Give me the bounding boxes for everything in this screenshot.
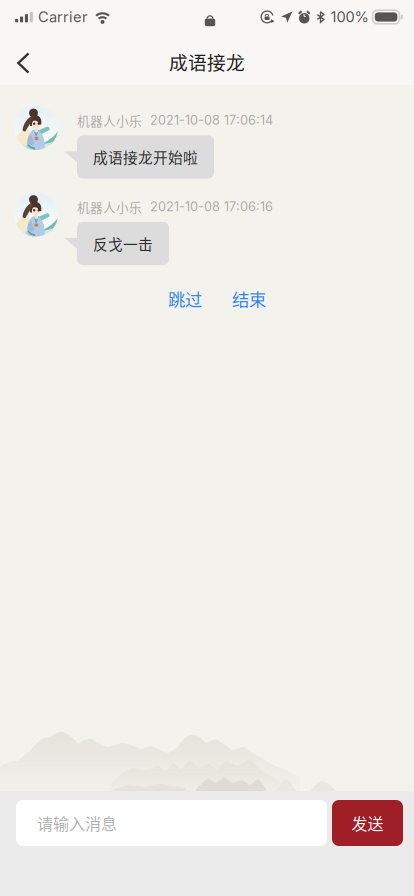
staticText: 反戈一击 (93, 233, 153, 254)
staticText: 成语接龙 (169, 48, 245, 75)
staticText: 发送 (351, 811, 383, 835)
staticText: 成语接龙开始啦 (93, 146, 198, 167)
button[interactable]: 跳过 (158, 279, 212, 318)
staticText: 100% (331, 8, 369, 26)
staticText: 机器人小乐 (77, 111, 142, 129)
staticText: Carrier (38, 8, 88, 26)
staticText: 2021-10-08 17:06:16 (150, 199, 273, 214)
button[interactable]: 发送 (332, 800, 403, 846)
staticText: 结束 (232, 286, 266, 311)
staticText: 机器人小乐 (77, 198, 142, 216)
button[interactable]: 结束 (222, 279, 276, 318)
button[interactable]: Back (0, 39, 44, 80)
staticText: 跳过 (168, 286, 202, 311)
staticText: 请输入消息 (37, 811, 117, 835)
staticText: 2021-10-08 17:06:14 (150, 112, 273, 128)
